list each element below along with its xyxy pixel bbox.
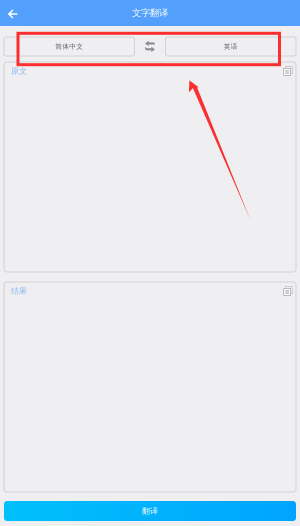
staticText: 翻译 xyxy=(142,506,158,516)
button[interactable]: Copy source text xyxy=(281,64,295,78)
staticText: 英语 xyxy=(224,42,238,51)
staticText: 简体中文 xyxy=(55,42,83,51)
button[interactable]: Copy result xyxy=(281,284,295,298)
button[interactable]: 简体中文 xyxy=(4,37,134,56)
staticText: 原文 xyxy=(11,66,27,76)
button[interactable]: Back xyxy=(0,0,26,26)
button[interactable]: 翻译 xyxy=(4,501,296,521)
button[interactable]: 英语 xyxy=(165,37,296,56)
staticText: 文字翻译 xyxy=(132,7,168,19)
staticText: 结果 xyxy=(11,286,27,296)
button[interactable]: Swap languages xyxy=(134,37,165,56)
